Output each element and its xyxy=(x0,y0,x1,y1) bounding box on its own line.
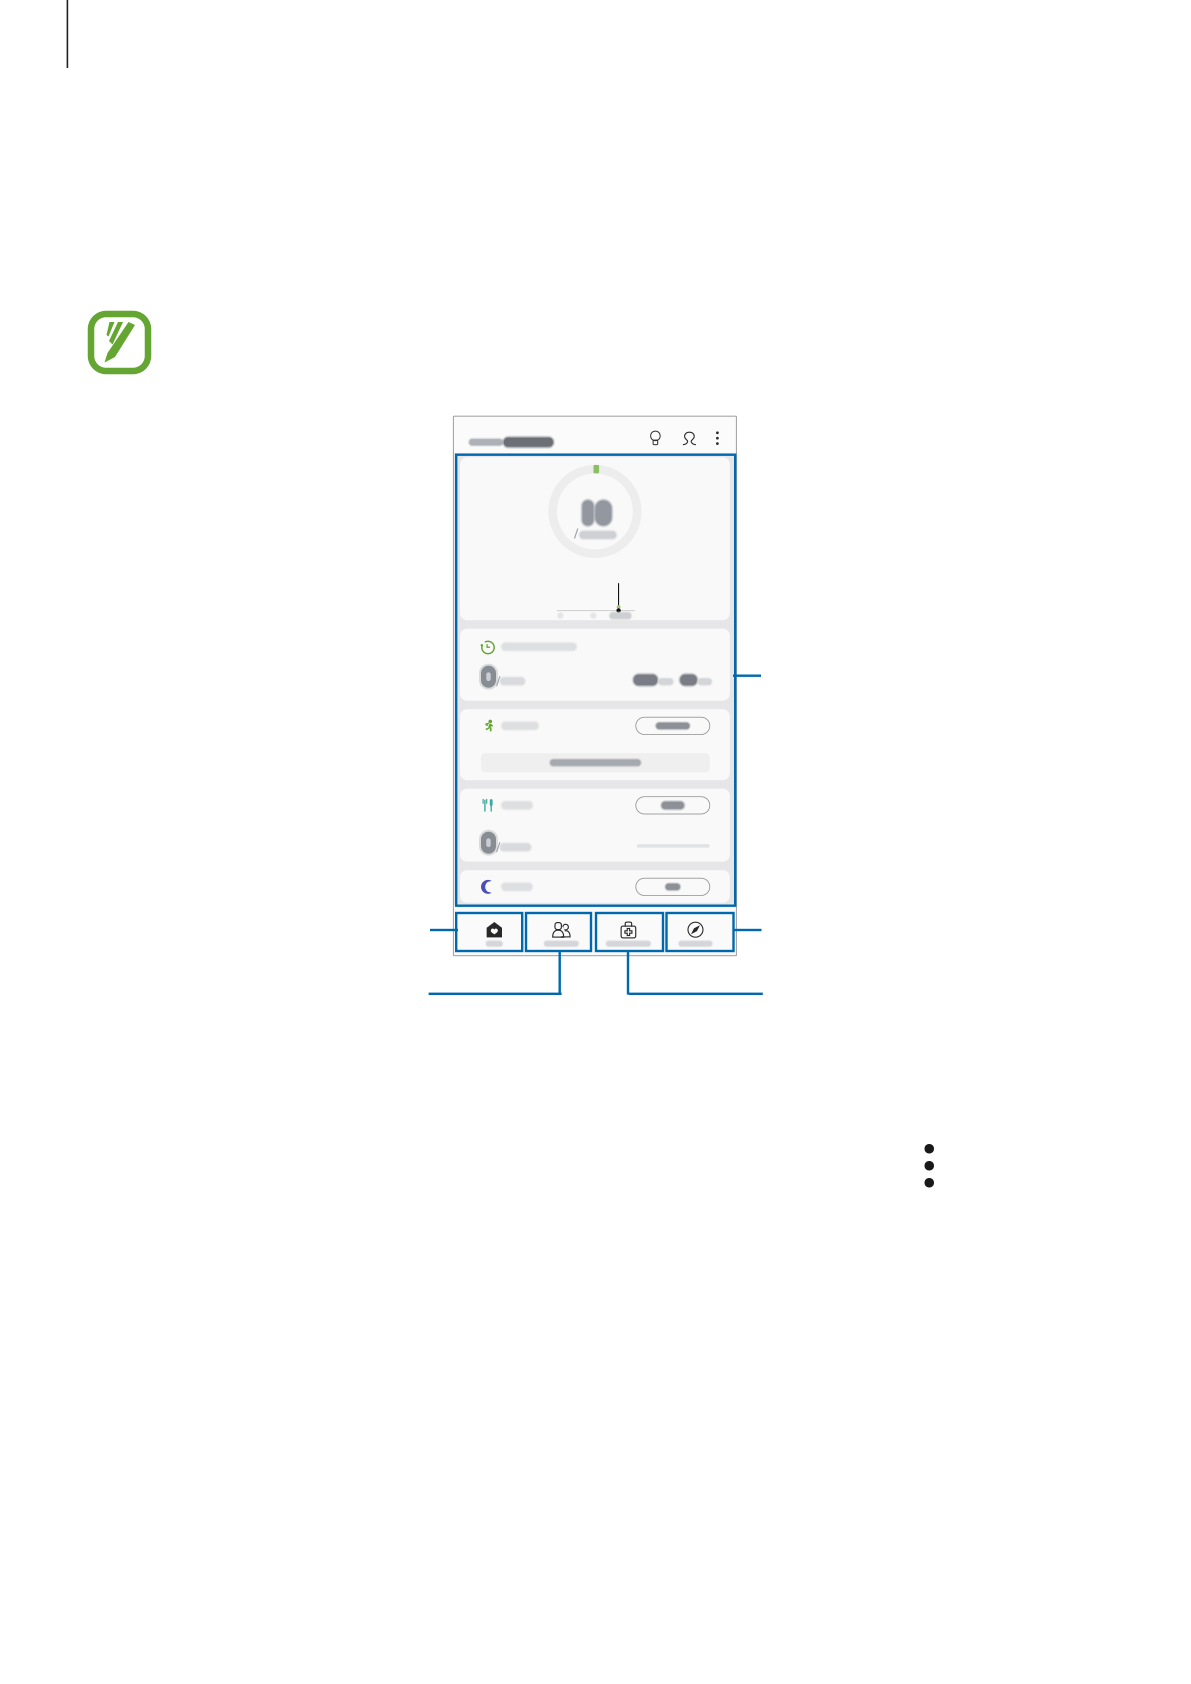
button[interactable]: Together xyxy=(528,906,595,956)
button[interactable]: Manage items xyxy=(595,906,662,956)
button[interactable]: Profile xyxy=(677,423,695,447)
button[interactable]: Discover xyxy=(662,906,729,956)
button[interactable]: Start workout xyxy=(636,717,710,734)
button[interactable]: More options xyxy=(710,423,724,447)
button[interactable]: Tips xyxy=(643,423,661,447)
button[interactable]: Set sleep xyxy=(636,878,710,895)
button[interactable]: Log food xyxy=(636,797,710,814)
button[interactable]: Home xyxy=(461,906,528,956)
